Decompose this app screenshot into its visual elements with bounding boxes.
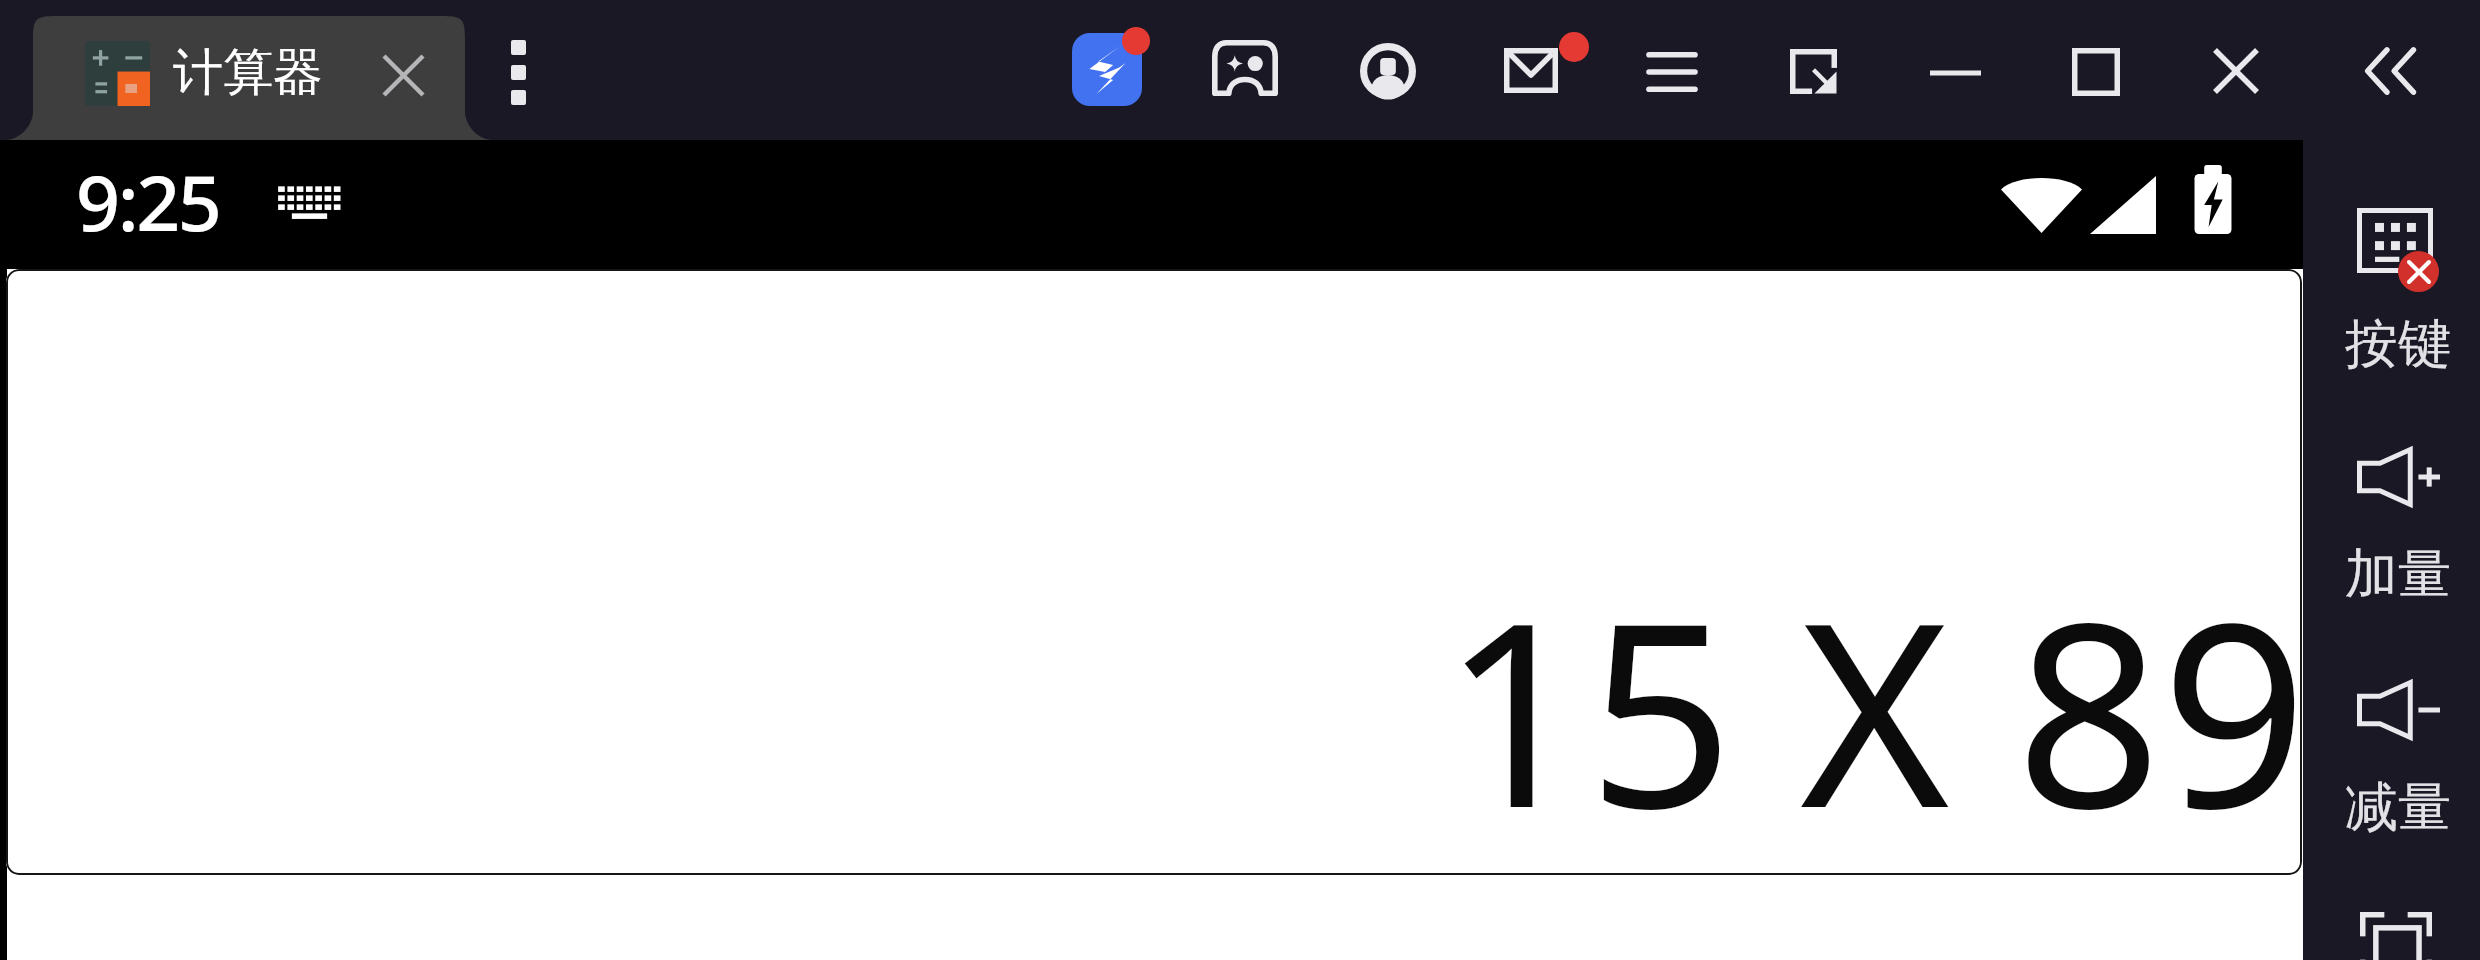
button[interactable]: Close	[2182, 17, 2290, 125]
button[interactable]: Close tab	[369, 41, 437, 109]
staticText: 加量	[2345, 541, 2451, 608]
button[interactable]: 加量	[2323, 423, 2473, 622]
button[interactable]: Maximize	[2042, 18, 2150, 126]
button[interactable]: 按键	[2323, 196, 2473, 392]
staticText: 减量	[2345, 774, 2451, 841]
staticText: 15 X 89	[1442, 534, 2302, 875]
button[interactable]: Screenshot	[2360, 912, 2446, 960]
staticText: 按键	[2345, 311, 2451, 378]
button[interactable]: 计算器 tab	[33, 16, 465, 140]
button[interactable]: Minimize	[1901, 19, 2009, 127]
staticText: 计算器	[173, 41, 323, 104]
button[interactable]: Menu	[1618, 18, 1726, 126]
button[interactable]: Mail	[1483, 16, 1591, 124]
button[interactable]: More options	[482, 36, 554, 108]
staticText: 9:25	[76, 149, 220, 254]
button[interactable]: Games	[1191, 14, 1299, 122]
button[interactable]: Collapse	[2336, 17, 2444, 125]
button[interactable]: Account	[1334, 17, 1442, 125]
button[interactable]: Resize	[1759, 17, 1867, 125]
button[interactable]: Boost	[1057, 15, 1165, 123]
button[interactable]: 减量	[2323, 656, 2473, 855]
